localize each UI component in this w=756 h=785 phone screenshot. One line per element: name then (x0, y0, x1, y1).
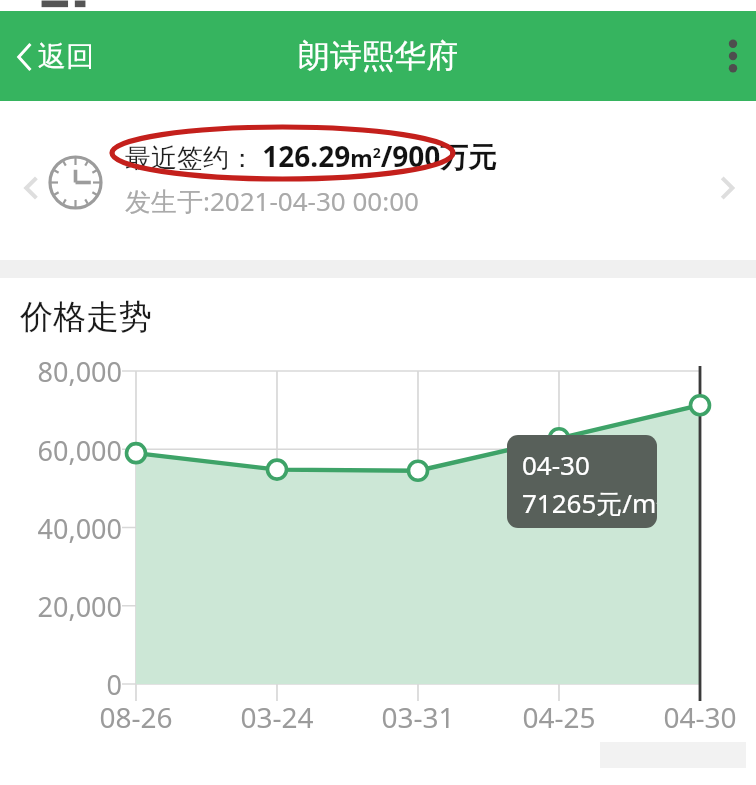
staticText: 03-31 (362, 698, 474, 736)
staticText: 最近签约： 126.29m2/900万元 (125, 137, 497, 175)
staticText: 返回 (38, 39, 94, 74)
staticText: 价格走势 (20, 296, 152, 338)
staticText: 0 (0, 666, 122, 703)
staticText: 04-25 (503, 698, 615, 736)
staticText: 04-30 (644, 698, 756, 736)
staticText: 发生于:2021-04-30 00:00 (125, 183, 419, 219)
staticText: 80,000 (0, 353, 122, 390)
button[interactable]: More options (710, 23, 756, 89)
button[interactable]: 返回 (0, 27, 114, 86)
button[interactable]: Previous (16, 165, 46, 211)
staticText: 20,000 (0, 588, 122, 625)
staticText: 40,000 (0, 510, 122, 547)
staticText: 朗诗熙华府 (298, 36, 458, 76)
staticText: 71265元/m2 (522, 485, 657, 521)
staticText: 60,000 (0, 432, 122, 469)
button[interactable]: 04-30 (507, 435, 657, 528)
button[interactable]: Previous (0, 101, 756, 260)
staticText: 03-24 (221, 698, 333, 736)
staticText: 08-26 (80, 698, 192, 736)
button[interactable]: Next (712, 165, 742, 211)
staticText: 04-30 (522, 447, 590, 482)
